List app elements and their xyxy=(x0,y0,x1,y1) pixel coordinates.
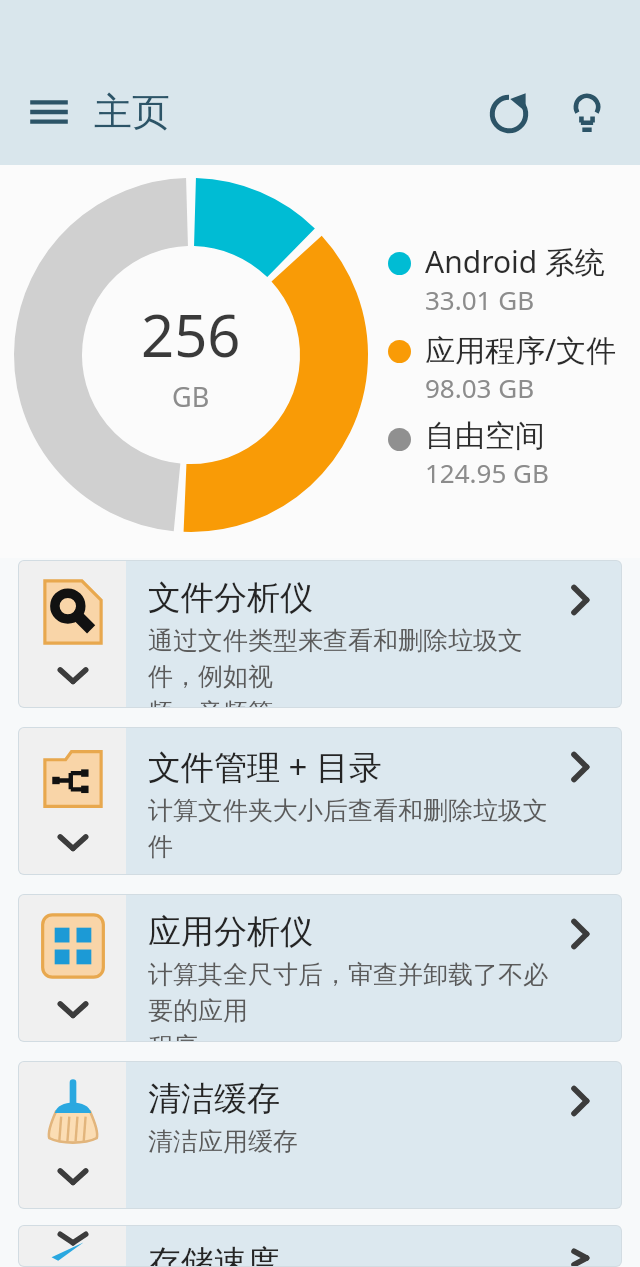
button[interactable]: 清洁缓存 xyxy=(19,1062,621,1208)
staticText: 计算文件夹大小后查看和删除垃圾文件 xyxy=(148,795,563,862)
button[interactable]: 文件管理 + 目录 xyxy=(19,728,621,874)
staticText: 计算其全尺寸后，审查并卸载了不必要的应用 程序 xyxy=(148,959,563,1041)
staticText: 应用分析仪 xyxy=(148,911,313,953)
staticText: 清洁应用缓存 xyxy=(148,1126,298,1157)
button[interactable]: 文件分析仪 xyxy=(19,561,621,707)
staticText: 通过文件类型来查看和删除垃圾文件，例如视 频，音频等 xyxy=(148,625,563,707)
staticText: 124.95 GB xyxy=(425,455,549,490)
staticText: 存储速度 xyxy=(148,1242,280,1266)
button[interactable]: 存储速度 xyxy=(19,1226,621,1266)
staticText: 33.01 GB xyxy=(425,282,535,317)
staticText: 主页 xyxy=(94,88,170,136)
staticText: 256 xyxy=(141,295,241,374)
staticText: 应用程序/文件 xyxy=(425,329,617,370)
button[interactable]: Menu xyxy=(16,79,82,145)
staticText: 清洁缓存 xyxy=(148,1078,280,1120)
button[interactable]: 应用分析仪 xyxy=(19,895,621,1041)
staticText: 自由空间 xyxy=(425,417,545,455)
button[interactable]: Refresh xyxy=(472,75,546,149)
staticText: 98.03 GB xyxy=(425,370,535,405)
staticText: 文件分析仪 xyxy=(148,577,313,619)
staticText: GB xyxy=(172,378,210,415)
staticText: 文件管理 + 目录 xyxy=(148,744,383,789)
staticText: Android 系统 xyxy=(425,241,606,282)
button[interactable]: Tips xyxy=(552,77,622,147)
